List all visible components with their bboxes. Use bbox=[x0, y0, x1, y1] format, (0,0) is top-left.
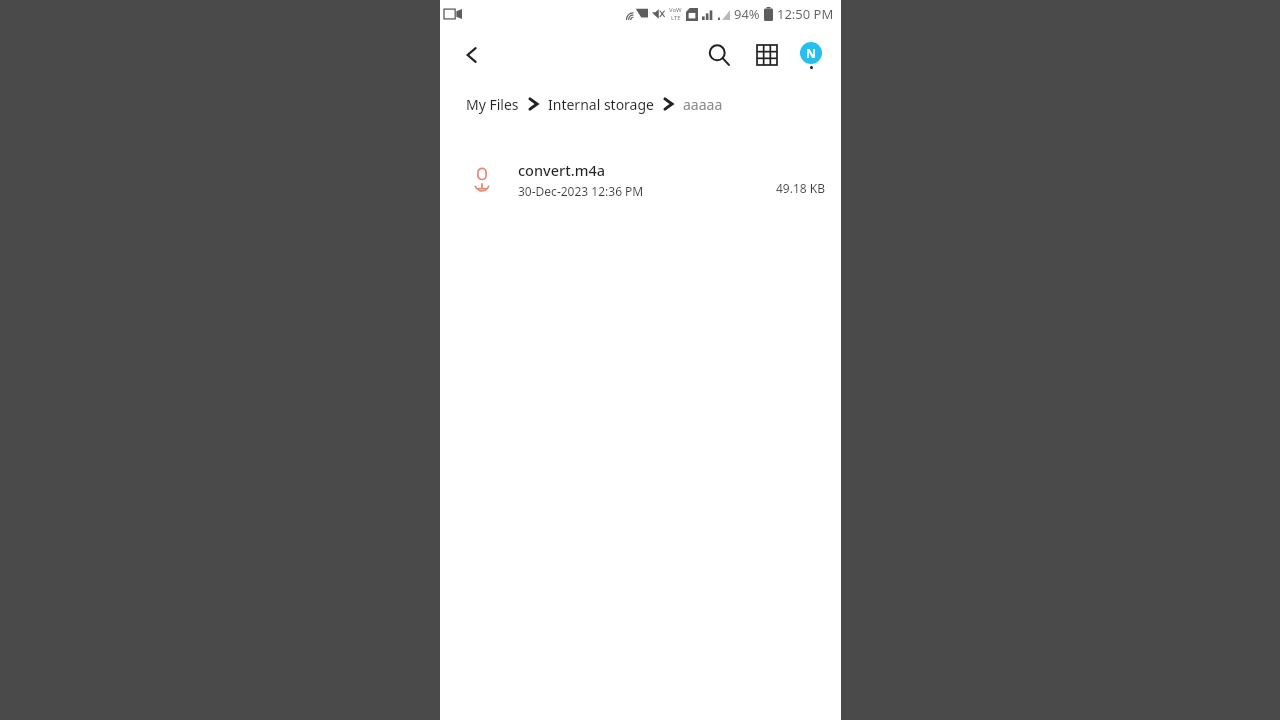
button[interactable]: View as grid bbox=[743, 31, 791, 79]
staticText: VoW bbox=[669, 6, 682, 14]
staticText: Internal storage bbox=[548, 95, 654, 114]
button[interactable]: My Files bbox=[466, 95, 519, 114]
staticText: 94% bbox=[734, 5, 760, 23]
button[interactable]: Search bbox=[695, 31, 743, 79]
staticText: 49.18 KB bbox=[775, 180, 825, 196]
button[interactable]: More options bbox=[791, 35, 831, 75]
staticText: LTE bbox=[671, 14, 681, 22]
staticText: aaaaa bbox=[683, 95, 723, 114]
staticText: convert.m4a bbox=[518, 160, 605, 180]
staticText: 12:50 PM bbox=[777, 5, 834, 23]
staticText: N bbox=[806, 45, 816, 61]
staticText: 30-Dec-2023 12:36 PM bbox=[518, 183, 644, 199]
button[interactable]: Internal storage bbox=[548, 95, 654, 114]
button[interactable]: convert.m4a bbox=[440, 148, 841, 210]
staticText: My Files bbox=[466, 95, 519, 114]
button[interactable]: aaaaa bbox=[683, 95, 723, 114]
button[interactable]: Back bbox=[450, 33, 494, 77]
